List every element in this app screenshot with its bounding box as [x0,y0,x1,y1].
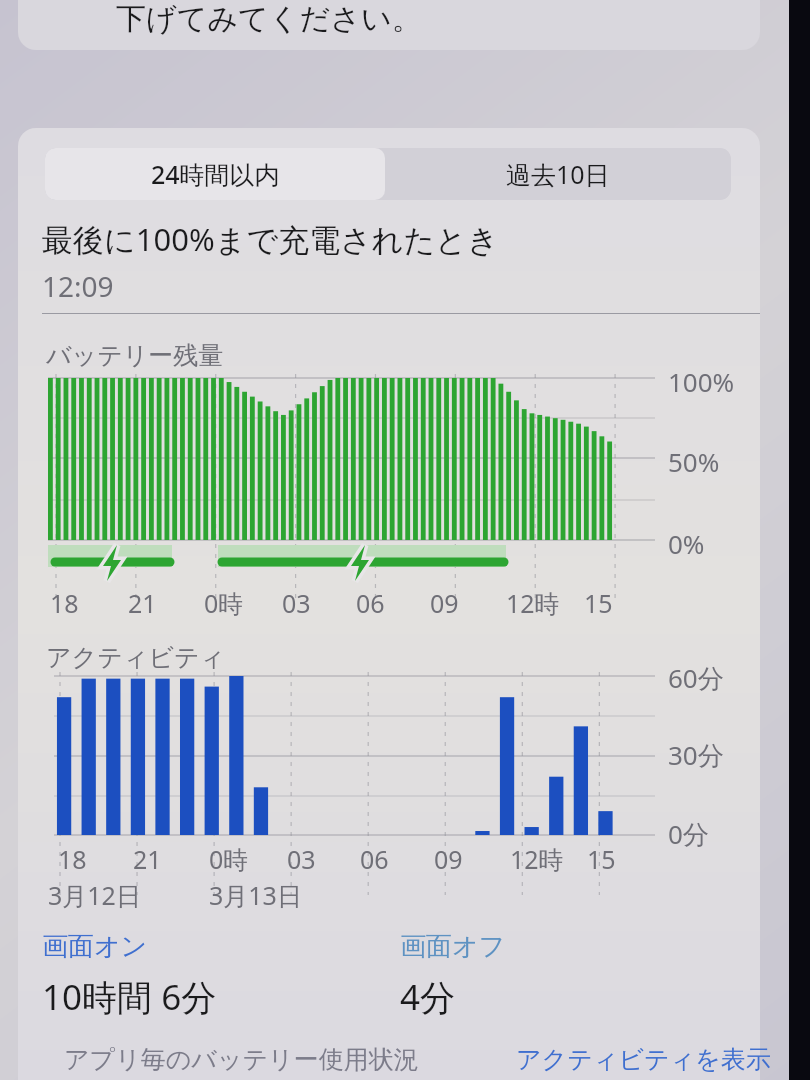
staticText: 10時間 6分 [42,973,217,1021]
staticText: 最後に100%まで充電されたとき [42,218,499,260]
staticText: 12時 [506,586,560,620]
staticText: 06 [356,586,385,620]
staticText: 18 [58,842,87,876]
staticText: 100% [668,364,735,399]
staticText: 30分 [668,737,724,773]
button[interactable]: 画面オン [42,930,217,1021]
staticText: アクティビティ [46,642,226,673]
button[interactable]: アクティビティを表示 [516,1044,771,1075]
staticText: 3月13日 [209,878,302,912]
staticText: 03 [282,586,311,620]
staticText: 09 [430,586,459,620]
staticText: 4分 [400,973,456,1021]
staticText: 0分 [668,816,709,852]
staticText: 画面オン [42,930,148,963]
staticText: 09 [434,842,463,876]
staticText: 06 [360,842,389,876]
button[interactable]: 過去10日 [385,148,731,200]
staticText: 12時 [510,842,564,876]
staticText: 18 [50,586,79,620]
button[interactable]: 24時間以内 [45,148,385,200]
staticText: アクティビティを表示 [516,1044,771,1075]
staticText: 12:09 [42,267,114,305]
staticText: 0% [668,526,705,561]
staticText: 03 [287,842,316,876]
staticText: 画面オフ [400,930,506,963]
staticText: バッテリー残量 [46,340,224,371]
staticText: 60分 [668,660,724,696]
staticText: 下げてみてください。 [116,0,422,38]
staticText: 21 [133,842,162,876]
staticText: 50% [668,444,720,479]
button[interactable]: 画面オフ [400,930,506,1021]
button[interactable]: アプリ毎のバッテリー使用状況 [64,1044,419,1075]
staticText: 15 [587,842,616,876]
staticText: 0時 [209,842,249,876]
staticText: 過去10日 [506,157,610,191]
staticText: 21 [128,586,157,620]
staticText: 0時 [204,586,244,620]
staticText: アプリ毎のバッテリー使用状況 [64,1044,419,1075]
staticText: 3月12日 [48,878,141,912]
staticText: 15 [584,586,613,620]
staticText: 24時間以内 [151,157,280,191]
